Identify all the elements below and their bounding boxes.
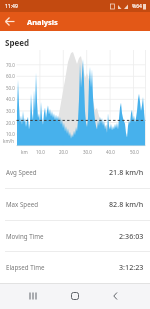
staticText: km/h: [3, 138, 15, 144]
staticText: 40.0: [106, 149, 115, 155]
staticText: 20.0: [59, 149, 68, 155]
staticText: Elapsed Time: [6, 263, 45, 271]
staticText: 10.0: [6, 131, 15, 137]
staticText: 21.8 km/h: [109, 167, 144, 177]
staticText: 20.0: [6, 120, 15, 126]
button[interactable]: Max Speed: [0, 188, 150, 220]
button[interactable]: [59, 283, 91, 309]
staticText: 10.0: [36, 149, 45, 155]
button[interactable]: Moving Time: [0, 220, 150, 252]
staticText: 50.0: [130, 149, 139, 155]
staticText: 11:49: [5, 3, 18, 10]
staticText: Analysis: [27, 17, 58, 27]
staticText: km: [21, 149, 28, 155]
staticText: Max Speed: [6, 200, 38, 208]
staticText: 40.0: [6, 96, 15, 102]
staticText: 60.0: [6, 73, 15, 79]
button[interactable]: [17, 283, 49, 309]
staticText: 82.8 km/h: [109, 199, 144, 209]
staticText: Speed: [5, 37, 30, 48]
staticText: 30.0: [83, 149, 92, 155]
staticText: %64: [132, 3, 142, 10]
staticText: Avg Speed: [6, 168, 37, 176]
button[interactable]: Avg Speed: [0, 156, 150, 188]
button[interactable]: [99, 283, 131, 309]
staticText: 50.0: [6, 85, 15, 91]
staticText: 3:12:23: [119, 262, 144, 272]
button[interactable]: [0, 12, 20, 31]
staticText: Moving Time: [6, 232, 44, 240]
staticText: 2:36:03: [119, 231, 144, 241]
button[interactable]: Elapsed Time: [0, 251, 150, 283]
staticText: 70.0: [6, 62, 15, 68]
staticText: 30.0: [6, 108, 15, 114]
